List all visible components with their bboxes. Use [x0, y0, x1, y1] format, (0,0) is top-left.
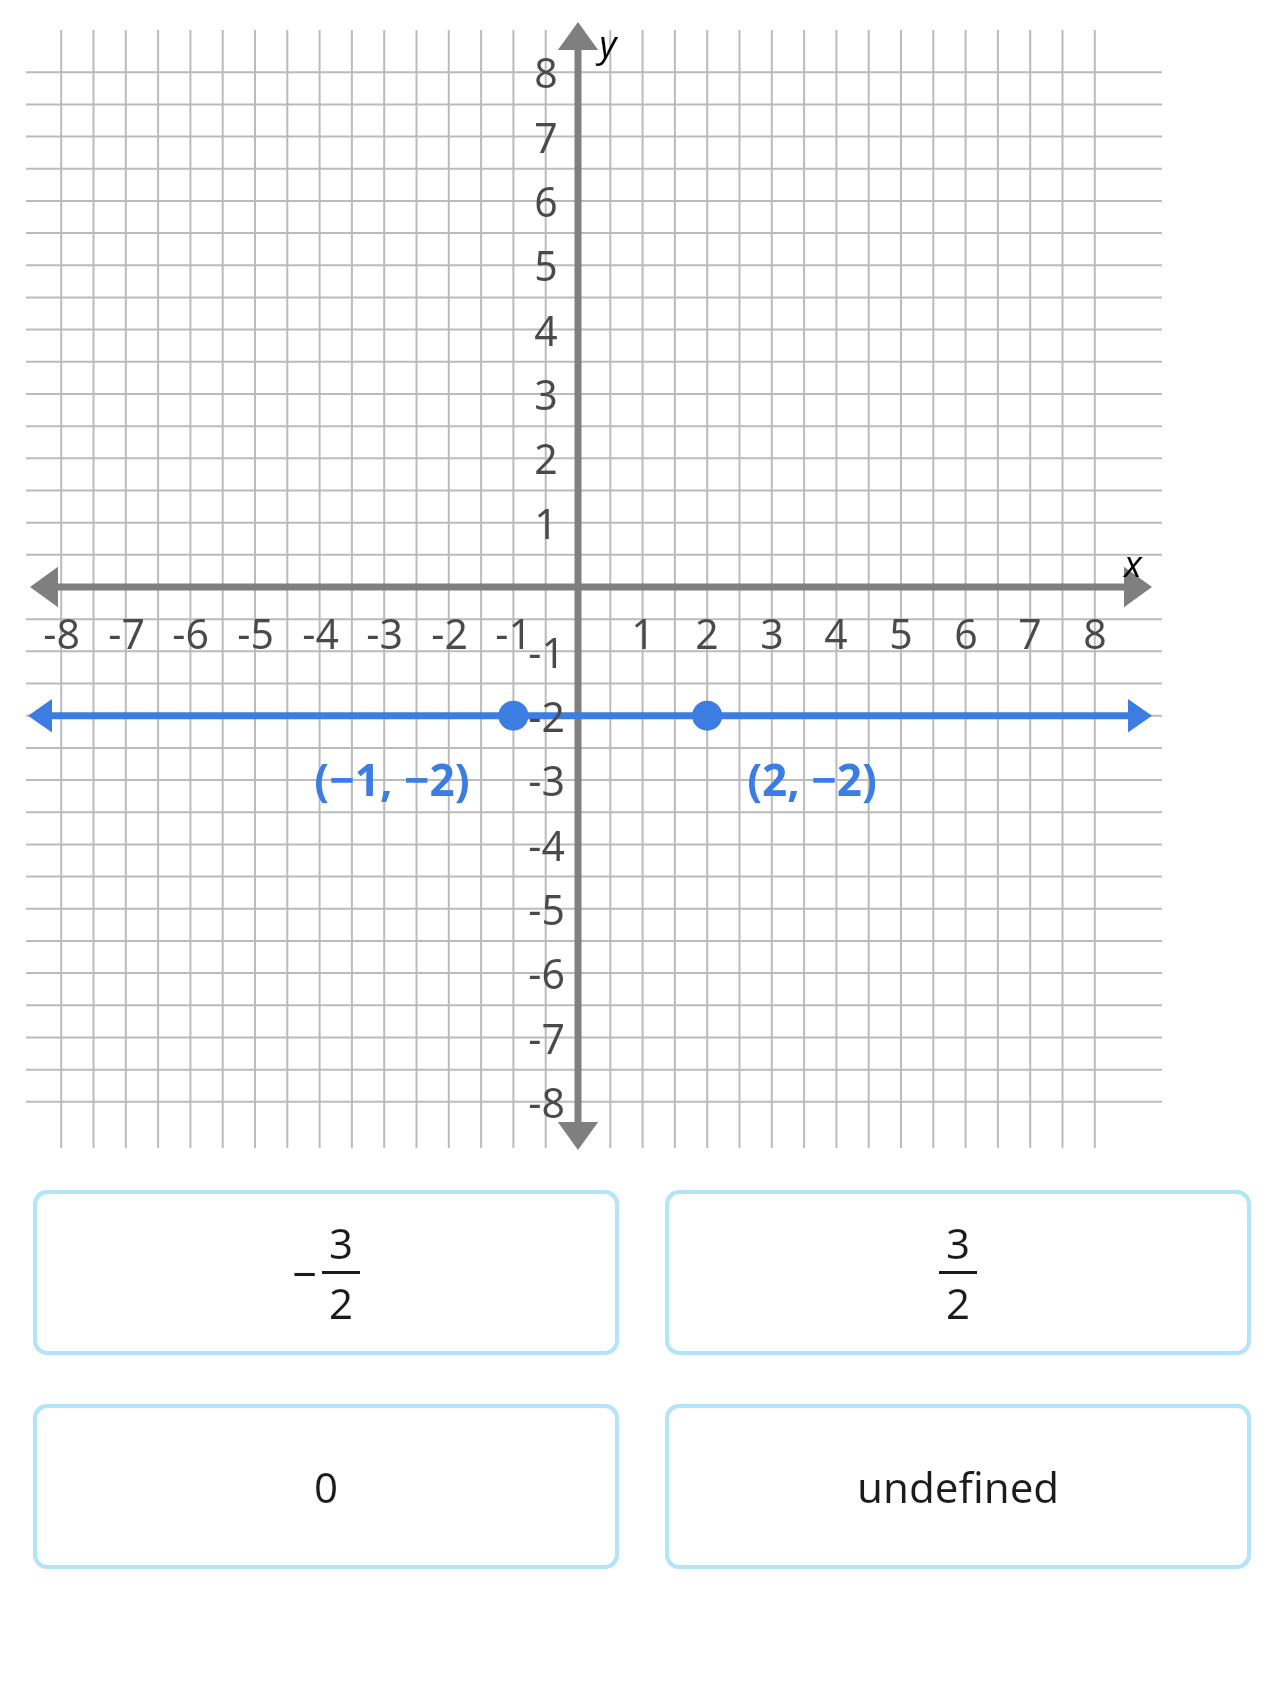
staticText: x	[1124, 537, 1142, 587]
button[interactable]: undefined	[669, 1408, 1247, 1565]
staticText: 4	[824, 605, 848, 661]
staticText: -5	[237, 605, 274, 661]
staticText: -4	[528, 817, 565, 873]
staticText: -8	[528, 1074, 565, 1130]
staticText: 0	[314, 1458, 339, 1515]
button[interactable]: 3	[669, 1194, 1247, 1351]
staticText: -6	[528, 945, 565, 1001]
staticText: -1	[528, 624, 565, 680]
staticText: -2	[431, 605, 468, 661]
staticText: -3	[366, 605, 403, 661]
staticText: 3	[534, 366, 558, 422]
staticText: (−1, −2)	[314, 749, 470, 809]
staticText: undefined	[857, 1458, 1060, 1515]
button[interactable]: 0	[37, 1408, 615, 1565]
button[interactable]: −	[37, 1194, 615, 1351]
staticText: 2	[695, 605, 719, 661]
staticText: 3	[760, 605, 784, 661]
staticText: -7	[528, 1010, 565, 1066]
staticText: y	[599, 17, 617, 67]
staticText: -1	[495, 605, 532, 661]
staticText: 2	[946, 1274, 971, 1331]
staticText: -7	[108, 605, 145, 661]
staticText: 3	[946, 1214, 971, 1271]
staticText: 8	[534, 44, 558, 100]
staticText: 8	[1083, 605, 1107, 661]
staticText: -5	[528, 881, 565, 937]
staticText: 4	[534, 302, 558, 358]
staticText: 1	[631, 605, 655, 661]
staticText: 6	[534, 173, 558, 229]
staticText: (2, −2)	[747, 749, 877, 809]
staticText: 7	[534, 109, 558, 165]
staticText: -3	[528, 752, 565, 808]
staticText: 7	[1018, 605, 1042, 661]
staticText: -4	[302, 605, 339, 661]
staticText: 3	[329, 1214, 354, 1271]
staticText: 2	[329, 1274, 354, 1331]
staticText: −	[292, 1243, 318, 1303]
staticText: 5	[889, 605, 913, 661]
staticText: 2	[534, 430, 558, 486]
staticText: 5	[534, 237, 558, 293]
staticText: 1	[534, 495, 558, 551]
staticText: -8	[43, 605, 80, 661]
staticText: 6	[954, 605, 978, 661]
staticText: -2	[528, 688, 565, 744]
staticText: -6	[172, 605, 209, 661]
